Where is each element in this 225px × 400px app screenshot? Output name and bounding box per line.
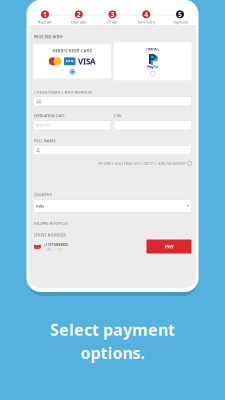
button[interactable]: DEBIT/CREDIT CARD [33, 44, 111, 78]
staticText: FULL NAME [33, 138, 55, 143]
staticText: PAY [164, 243, 173, 250]
staticText: PROCEED WITH [33, 34, 62, 39]
staticText: Operator [71, 19, 87, 25]
staticText: P [147, 49, 156, 68]
staticText: AMEX [66, 59, 74, 63]
staticText: Payment [172, 19, 187, 25]
staticText: WHERE CAN I FIND MY CREDIT CARD NUMBER? [98, 161, 186, 166]
button[interactable]: PAY [146, 239, 191, 253]
staticText: Select payment [50, 319, 175, 340]
staticText: ▾ [187, 204, 189, 208]
staticText: Pay [147, 64, 153, 69]
staticText: P [149, 50, 158, 69]
staticText: EXPIRATION DATE [33, 113, 64, 118]
staticText: Number [37, 19, 52, 25]
staticText: 2 [77, 10, 81, 19]
staticText: India [36, 203, 44, 208]
staticText: 4 [144, 10, 148, 19]
button[interactable]: PAYPAL [114, 42, 192, 80]
staticText: BILLING ADDRESS [33, 220, 67, 226]
staticText: STREET ADDRESS [33, 232, 65, 237]
staticText: PAYPAL [146, 46, 159, 52]
staticText: options. [80, 342, 144, 363]
staticText: 1 [43, 10, 47, 19]
staticText: +17215800000 [43, 242, 67, 247]
staticText: Pal [153, 64, 158, 69]
staticText: 1 USD [54, 248, 62, 251]
staticText: Summary [137, 19, 155, 25]
staticText: CVV [114, 113, 121, 118]
staticText: MM/YY [36, 123, 49, 128]
staticText: 5 [178, 10, 182, 19]
staticText: CREDIT/DEBIT CARD NUMBER [33, 89, 92, 95]
staticText: VISA [78, 56, 96, 67]
staticText: COUNTRY [33, 192, 51, 197]
staticText: 3 [110, 10, 114, 19]
staticText: 5 USD - [43, 248, 53, 251]
staticText: Order [107, 19, 118, 25]
staticText: DEBIT/CREDIT CARD [52, 48, 92, 53]
